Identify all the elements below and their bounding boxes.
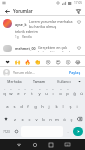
staticText: 👏 — [34, 59, 41, 65]
button[interactable]: Recents — [43, 139, 59, 150]
button[interactable]: Send — [73, 127, 83, 136]
staticText: z — [14, 117, 16, 123]
button[interactable]: Merhaba — [2, 77, 26, 86]
button[interactable]: 9 — [57, 86, 63, 99]
button[interactable]: Yorum ekle... — [13, 70, 68, 75]
button[interactable]: 2 — [8, 86, 14, 99]
staticText: 5 — [31, 88, 33, 91]
button[interactable]: ç — [68, 112, 74, 125]
staticText: 17:05 — [74, 1, 83, 5]
button[interactable]: Like — [76, 19, 82, 25]
staticText: 9 — [60, 88, 62, 91]
button[interactable]: 🙌 — [14, 58, 21, 65]
button[interactable]: ş — [67, 99, 73, 112]
button[interactable]: Like — [76, 45, 82, 51]
button[interactable]: k — [53, 99, 59, 112]
staticText: 😢 — [45, 59, 51, 65]
staticText: c — [28, 117, 31, 123]
button[interactable]: 3 — [15, 86, 21, 99]
button[interactable]: 👏 — [34, 58, 41, 65]
button[interactable]: f — [25, 99, 31, 112]
staticText: ❤️ — [5, 59, 10, 65]
button[interactable]: a — [4, 99, 10, 112]
button[interactable]: Home — [27, 139, 43, 150]
button[interactable]: j — [46, 99, 52, 112]
staticText: y — [38, 91, 41, 97]
button[interactable]: v — [33, 112, 39, 125]
staticText: Paylaş — [69, 70, 81, 75]
button[interactable]: 1 — [1, 86, 7, 99]
staticText: Yorumlar — [13, 8, 33, 14]
button[interactable]: s — [11, 99, 17, 112]
staticText: 1g — [15, 35, 19, 39]
button[interactable]: ?123 — [1, 126, 12, 137]
button[interactable]: x — [19, 112, 25, 125]
staticText: 🔥 — [24, 59, 31, 65]
staticText: w — [9, 91, 13, 97]
button[interactable]: Paylaş — [68, 70, 82, 75]
button[interactable]: 8 — [50, 86, 56, 99]
staticText: i — [76, 104, 78, 110]
button[interactable]: ö — [61, 112, 67, 125]
button[interactable]: 😂 — [74, 58, 81, 65]
button[interactable]: Kullanıcı — [51, 77, 76, 86]
button[interactable]: i — [74, 99, 80, 112]
button[interactable]: 😢 — [44, 58, 51, 65]
button[interactable]: 😮 — [64, 58, 71, 65]
staticText: 1 — [4, 88, 6, 91]
button[interactable]: Backspace — [75, 112, 84, 125]
button[interactable]: l — [60, 99, 66, 112]
staticText: q — [3, 91, 6, 97]
staticText: . — [67, 129, 69, 134]
button[interactable]: z — [12, 112, 18, 125]
staticText: 😍 — [55, 59, 61, 65]
button[interactable]: d — [18, 99, 24, 112]
button[interactable]: ayse_k — [0, 16, 85, 42]
staticText: o — [59, 91, 62, 97]
button[interactable]: 4 — [22, 86, 28, 99]
button[interactable]: 7 — [43, 86, 49, 99]
staticText: h — [41, 104, 44, 110]
staticText: r — [24, 91, 26, 97]
staticText: ayse_k — [15, 22, 27, 27]
button[interactable]: h — [39, 99, 45, 112]
staticText: ö — [63, 117, 66, 123]
staticText: Lorem yorumlar merhaba bu harika olmuş — [29, 19, 74, 29]
button[interactable]: More — [76, 77, 83, 86]
staticText: k — [55, 104, 58, 110]
button[interactable]: 😍 — [54, 58, 61, 65]
button[interactable]: 5 — [29, 86, 35, 99]
button[interactable]: 6 — [36, 86, 42, 99]
button[interactable]: mehmet_00 — [0, 42, 85, 55]
button[interactable]: c — [26, 112, 32, 125]
staticText: b — [42, 117, 45, 123]
button[interactable]: Filter — [74, 7, 82, 15]
staticText: l — [62, 104, 64, 110]
button[interactable]: g — [32, 99, 38, 112]
button[interactable]: 0 — [64, 86, 70, 99]
button[interactable]: 🔥 — [24, 58, 31, 65]
button[interactable]: Keyboard — [59, 139, 75, 150]
staticText: 7 — [46, 88, 48, 91]
staticText: t — [31, 91, 33, 97]
staticText: v — [35, 117, 38, 123]
staticText: Merhaba — [7, 79, 22, 84]
staticText: ğ — [73, 91, 76, 97]
button[interactable]: ğ — [71, 86, 77, 99]
button[interactable]: ❤️ — [4, 58, 11, 65]
staticText: 3 — [18, 88, 20, 91]
staticText: p — [66, 91, 69, 97]
staticText: s — [13, 104, 16, 110]
button[interactable]: Back — [3, 7, 11, 15]
button[interactable]: b — [40, 112, 46, 125]
button[interactable]: ü — [78, 86, 84, 99]
button[interactable]: n — [47, 112, 53, 125]
button[interactable]: Shift — [1, 112, 11, 125]
button[interactable]: m — [54, 112, 60, 125]
button[interactable]: Emoji — [13, 126, 20, 137]
button[interactable]: Back — [11, 139, 27, 150]
staticText: Gerçekten en çok beğendiğim, elimde ve — [38, 45, 74, 52]
button[interactable]: Tamam — [26, 77, 51, 86]
